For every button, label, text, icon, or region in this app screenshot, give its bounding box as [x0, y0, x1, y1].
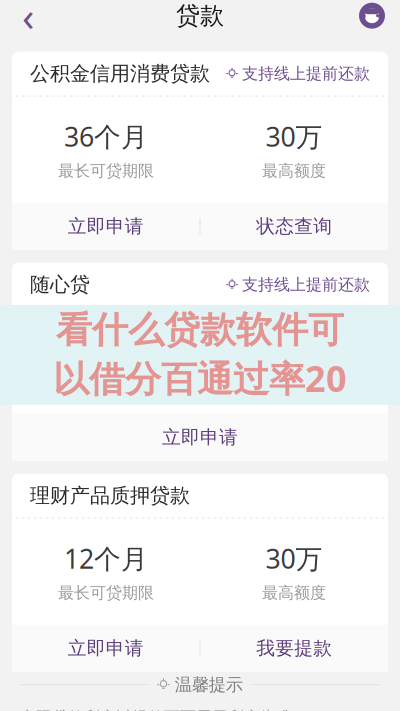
button[interactable]: 立即申请	[12, 625, 199, 672]
button[interactable]: 我要提款	[200, 625, 388, 672]
staticText: 最高额度	[262, 583, 326, 603]
button[interactable]: 状态查询	[200, 203, 388, 250]
button[interactable]: Back	[6, 0, 50, 38]
staticText: 立即申请	[68, 637, 144, 660]
staticText: 最高额度	[262, 372, 326, 392]
staticText: 以借分百通过率20	[53, 354, 347, 402]
staticText: ‹	[22, 0, 34, 42]
staticText: 30万	[265, 119, 322, 154]
staticText: 最长可贷期限	[58, 372, 154, 392]
staticText: 最高额度	[262, 161, 326, 181]
staticText: 30万	[265, 541, 322, 576]
staticText: 30万	[265, 330, 322, 365]
staticText: 我要提款	[256, 637, 332, 660]
button[interactable]: 立即申请	[12, 414, 388, 461]
staticText: 看什么贷款软件可	[56, 308, 344, 352]
staticText: 贷款	[176, 1, 224, 30]
staticText: 公积金信用消费贷款	[30, 61, 210, 86]
staticText: 状态查询	[256, 215, 332, 238]
button[interactable]: Customer service	[350, 0, 394, 38]
staticText: 立即申请	[162, 426, 238, 449]
staticText: 温馨提示	[175, 674, 243, 695]
button[interactable]: 立即申请	[12, 203, 199, 250]
staticText: 12个月	[64, 330, 148, 365]
staticText: 最长可贷期限	[58, 161, 154, 181]
staticText: 随心贷	[30, 272, 90, 297]
staticText: 支持线上提前还款	[242, 64, 370, 84]
staticText: 立即申请	[68, 215, 144, 238]
staticText: 36个月	[64, 119, 148, 154]
staticText: 支持线上提前还款	[242, 275, 370, 295]
staticText: 实际贷款利率以提款页面展示利率为准	[20, 708, 292, 711]
staticText: 理财产品质押贷款	[30, 483, 190, 508]
staticText: 12个月	[64, 541, 148, 576]
staticText: 最长可贷期限	[58, 583, 154, 603]
